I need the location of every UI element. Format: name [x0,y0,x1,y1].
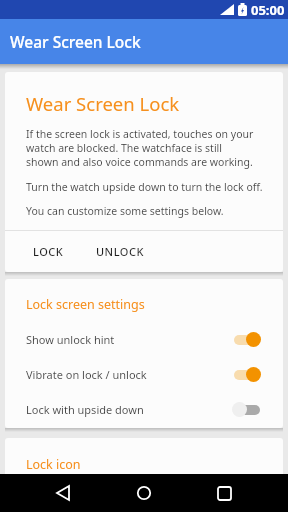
button[interactable]: LOCK [21,236,76,267]
staticText: 05:00 [251,1,285,19]
staticText: Lock screen settings [26,296,145,313]
staticText: Wear Screen Lock [10,31,141,52]
button[interactable]: UNLOCK [84,236,156,267]
staticText: Vibrate on lock / unlock [26,367,147,382]
button[interactable]: Lock with upside down [5,392,283,427]
button[interactable]: Show unlock hint [5,322,283,357]
staticText: UNLOCK [96,244,144,259]
staticText: If the screen lock is activated, touches… [26,127,254,169]
button[interactable] [134,483,154,503]
staticText: LOCK [33,244,64,259]
staticText: Turn the watch upside down to turn the l… [26,180,263,194]
button[interactable] [214,483,234,503]
staticText: Show unlock hint [26,332,115,347]
button[interactable]: Vibrate on lock / unlock [5,357,283,392]
staticText: You can customize some settings below. [26,204,224,218]
button[interactable] [53,483,73,503]
staticText: Lock with upside down [26,402,144,417]
staticText: Lock icon [26,456,81,473]
staticText: Wear Screen Lock [26,91,180,116]
